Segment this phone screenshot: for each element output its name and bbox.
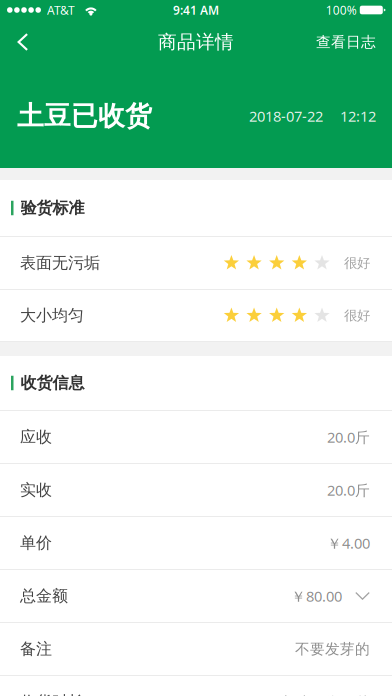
staticText: 收货时长 <box>20 692 84 696</box>
button[interactable]: 单价 <box>0 517 392 570</box>
staticText: ￥80.00 <box>291 586 342 606</box>
staticText: 验货标准 <box>20 198 84 218</box>
staticText: 9:41 AM <box>173 2 219 18</box>
staticText: ￥4.00 <box>327 533 370 553</box>
button[interactable]: 实收 <box>0 464 392 517</box>
staticText: 应收 <box>20 427 52 447</box>
staticText: 备注 <box>20 639 52 659</box>
staticText: 20.0斤 <box>327 480 370 500</box>
staticText: 总金额 <box>20 586 68 606</box>
staticText: 很好 <box>344 307 370 324</box>
button[interactable]: 收货时长 <box>0 676 392 696</box>
button[interactable]: 备注 <box>0 623 392 676</box>
staticText: 实收 <box>20 480 52 500</box>
staticText: 10小时10分30秒 <box>262 692 370 696</box>
button[interactable]: 表面无污垢 <box>0 237 392 290</box>
staticText: 很好 <box>344 255 370 271</box>
staticText: 不要发芽的 <box>295 640 370 658</box>
staticText: 收货信息 <box>20 373 84 393</box>
button[interactable]: 应收 <box>0 411 392 464</box>
staticText: 表面无污垢 <box>20 253 100 273</box>
staticText: 土豆已收货 <box>17 100 152 132</box>
staticText: 查看日志 <box>316 33 376 51</box>
button[interactable]: 大小均匀 <box>0 290 392 342</box>
staticText: 商品详情 <box>158 30 234 53</box>
staticText: AT&T <box>47 2 75 18</box>
staticText: 20.0斤 <box>327 427 370 447</box>
staticText: 大小均匀 <box>20 306 84 325</box>
staticText: 2018-07-22 <box>249 106 323 126</box>
staticText: 单价 <box>20 533 52 553</box>
button[interactable]: 返回 <box>1 20 45 64</box>
button[interactable]: 总金额 <box>0 570 392 623</box>
staticText: 100% <box>326 2 357 18</box>
staticText: 12:12 <box>340 106 376 126</box>
button[interactable]: 查看日志 <box>300 20 392 64</box>
